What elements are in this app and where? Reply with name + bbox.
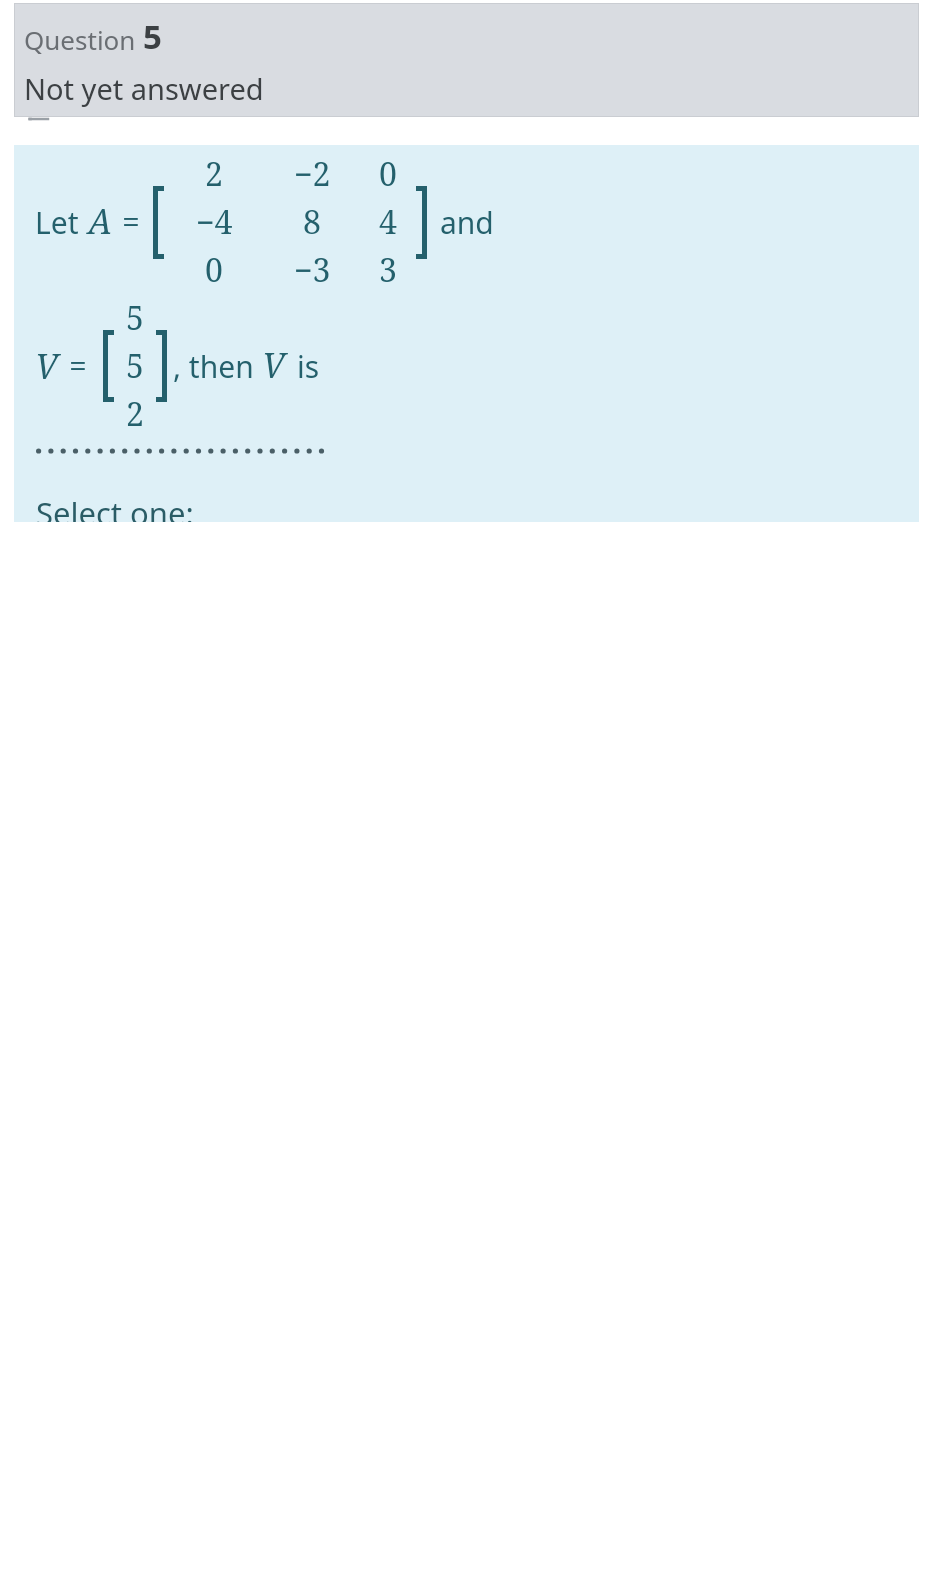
staticText: is — [297, 346, 320, 387]
staticText: 4 — [379, 200, 397, 244]
staticText: 8 — [303, 200, 321, 244]
staticText: , then — [173, 346, 254, 387]
staticText: 2 — [126, 392, 144, 436]
staticText: and — [440, 202, 494, 243]
staticText: 3 — [379, 248, 397, 292]
staticText: 2 — [205, 152, 223, 196]
staticText: 5 — [126, 296, 144, 340]
staticText: = — [122, 200, 140, 244]
staticText: V — [262, 342, 285, 388]
staticText: Let — [35, 202, 79, 243]
staticText: −3 — [294, 248, 331, 292]
staticText: 5 — [126, 344, 144, 388]
staticText: Question — [24, 22, 136, 57]
staticText: = — [69, 344, 87, 388]
staticText: A — [88, 198, 112, 244]
staticText: 5 — [143, 14, 162, 59]
staticText: Select one: — [36, 492, 194, 522]
staticText: Not yet answered — [24, 69, 264, 108]
staticText: V — [35, 343, 58, 389]
staticText: 0 — [205, 248, 223, 292]
staticText: 0 — [379, 152, 397, 196]
staticText: −4 — [196, 200, 233, 244]
staticText: −2 — [294, 152, 331, 196]
